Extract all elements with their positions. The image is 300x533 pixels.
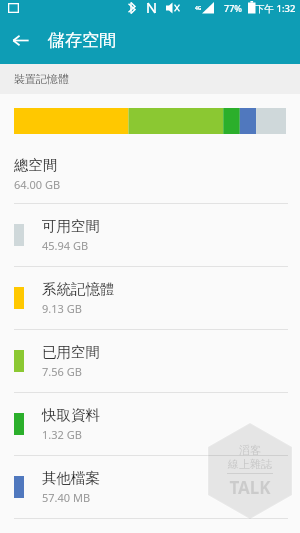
staticText: 已用空間 (42, 343, 100, 361)
staticText: 總空間 (14, 156, 58, 174)
staticText: 45.94 GB (42, 238, 89, 253)
button[interactable]: 可用空間 (0, 204, 300, 266)
staticText: 快取資料 (42, 406, 100, 424)
button[interactable]: 其他檔案 (0, 456, 300, 518)
staticText: TALK (229, 476, 271, 499)
staticText: 系統記憶體 (42, 280, 115, 298)
staticText: 可用空間 (42, 217, 100, 235)
button[interactable]: 總空間 (0, 156, 300, 203)
staticText: 其他檔案 (42, 469, 100, 487)
staticText: 線上雜誌 (228, 457, 272, 471)
staticText: 滔客 (239, 443, 261, 457)
staticText: 下午 1:32 (255, 2, 296, 15)
staticText: 儲存空間 (48, 30, 116, 51)
staticText: 1.32 GB (42, 427, 82, 442)
staticText: 77% (224, 2, 242, 14)
staticText: 64.00 GB (14, 177, 61, 192)
button[interactable]: 系統記憶體 (0, 267, 300, 329)
staticText: 裝置記憶體 (14, 72, 69, 86)
button[interactable]: Back (0, 20, 40, 60)
button[interactable]: 快取資料 (0, 393, 300, 455)
staticText: 57.40 MB (42, 490, 91, 505)
staticText: 7.56 GB (42, 364, 82, 379)
staticText: 9.13 GB (42, 301, 82, 316)
staticText: 4G (195, 5, 202, 12)
button[interactable]: 已用空間 (0, 330, 300, 392)
